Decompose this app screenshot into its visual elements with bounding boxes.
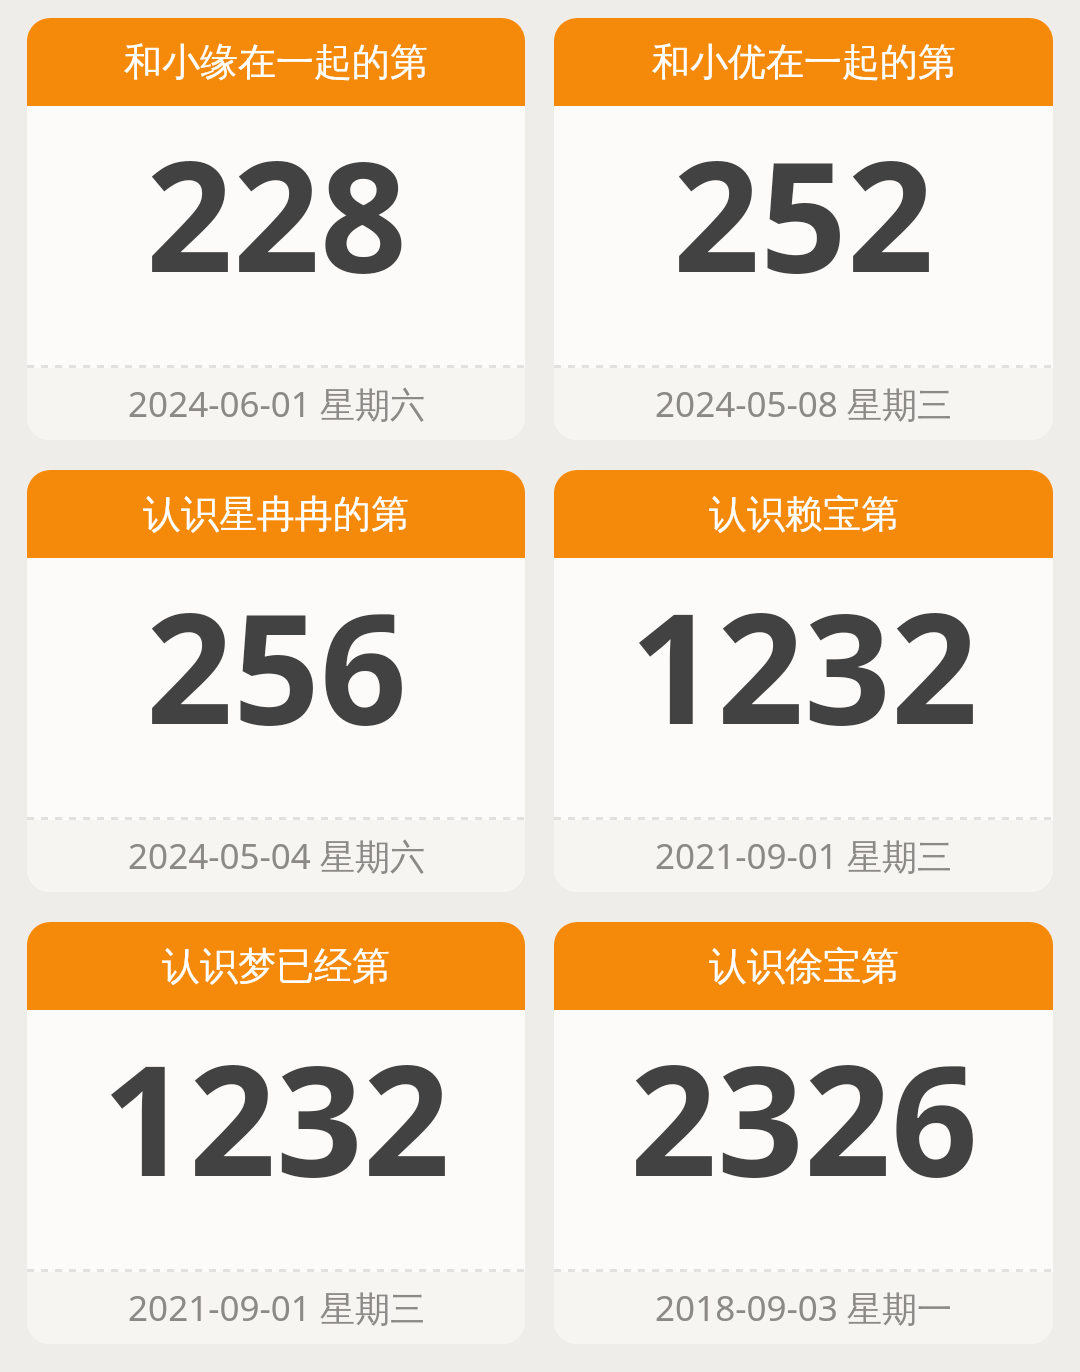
staticText: 2024-05-04 星期六: [128, 832, 425, 880]
staticText: 256: [146, 562, 407, 769]
staticText: 认识徐宝第: [709, 942, 899, 990]
button[interactable]: 和小优在一起的第: [554, 18, 1053, 440]
staticText: 认识梦已经第: [162, 942, 390, 990]
staticText: 2021-09-01 星期三: [128, 1284, 425, 1332]
staticText: 和小缘在一起的第: [124, 38, 428, 86]
staticText: 认识赖宝第: [709, 490, 899, 538]
staticText: 2326: [630, 1014, 978, 1221]
button[interactable]: 和小缘在一起的第: [27, 18, 525, 440]
staticText: 252: [673, 110, 934, 317]
staticText: 认识星冉冉的第: [143, 490, 409, 538]
button[interactable]: 认识赖宝第: [554, 470, 1053, 892]
staticText: 228: [146, 110, 407, 317]
staticText: 2018-09-03 星期一: [655, 1284, 952, 1332]
staticText: 2021-09-01 星期三: [655, 832, 952, 880]
staticText: 2024-06-01 星期六: [128, 380, 425, 428]
staticText: 2024-05-08 星期三: [655, 380, 952, 428]
button[interactable]: 认识徐宝第: [554, 922, 1053, 1344]
button[interactable]: 认识梦已经第: [27, 922, 525, 1344]
staticText: 1232: [630, 562, 978, 769]
button[interactable]: 认识星冉冉的第: [27, 470, 525, 892]
staticText: 和小优在一起的第: [652, 38, 956, 86]
staticText: 1232: [102, 1014, 450, 1221]
